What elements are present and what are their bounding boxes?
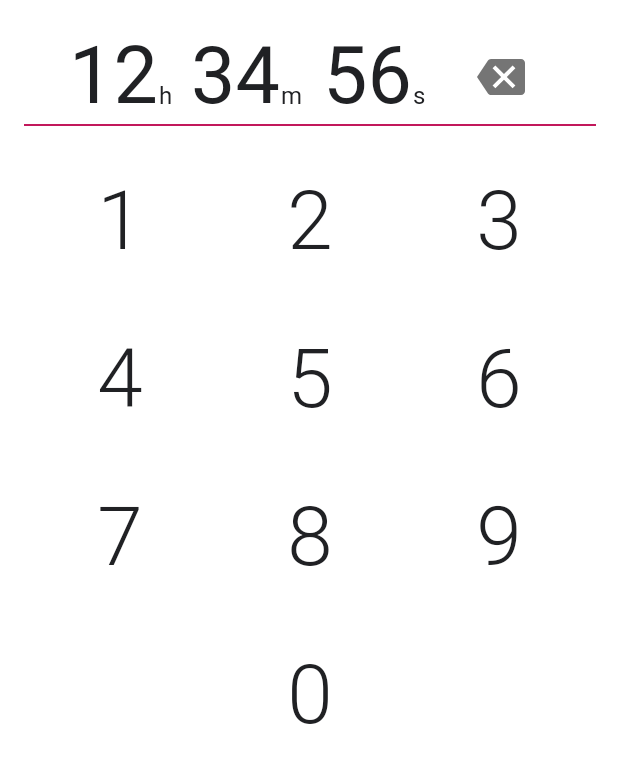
staticText: 3 bbox=[476, 173, 522, 269]
button[interactable]: 7 bbox=[25, 458, 215, 616]
button[interactable]: 2 bbox=[215, 142, 404, 300]
staticText: m bbox=[281, 82, 303, 110]
staticText: 2 bbox=[287, 173, 333, 269]
staticText: 56 bbox=[323, 30, 412, 123]
staticText: 4 bbox=[97, 331, 143, 427]
staticText: 12 bbox=[69, 30, 158, 123]
staticText: 5 bbox=[287, 331, 333, 427]
staticText: 7 bbox=[97, 489, 143, 585]
button[interactable]: 5 bbox=[215, 300, 404, 458]
staticText: s bbox=[413, 82, 426, 110]
button[interactable]: Hours bbox=[69, 30, 172, 123]
staticText: 34 bbox=[191, 30, 280, 123]
staticText: 1 bbox=[97, 173, 143, 269]
staticText: 6 bbox=[476, 331, 522, 427]
button[interactable]: 6 bbox=[404, 300, 593, 458]
staticText: 0 bbox=[287, 647, 333, 743]
button[interactable]: Backspace bbox=[460, 36, 542, 118]
staticText: 8 bbox=[287, 489, 333, 585]
staticText: 9 bbox=[476, 489, 522, 585]
button[interactable]: 0 bbox=[215, 616, 404, 774]
staticText: h bbox=[159, 82, 173, 110]
button[interactable]: 9 bbox=[404, 458, 593, 616]
button[interactable]: 3 bbox=[404, 142, 593, 300]
button[interactable]: Minutes bbox=[191, 30, 302, 123]
button[interactable]: 4 bbox=[25, 300, 215, 458]
button[interactable]: Seconds bbox=[323, 30, 425, 123]
button[interactable]: 1 bbox=[25, 142, 215, 300]
button[interactable]: 8 bbox=[215, 458, 404, 616]
